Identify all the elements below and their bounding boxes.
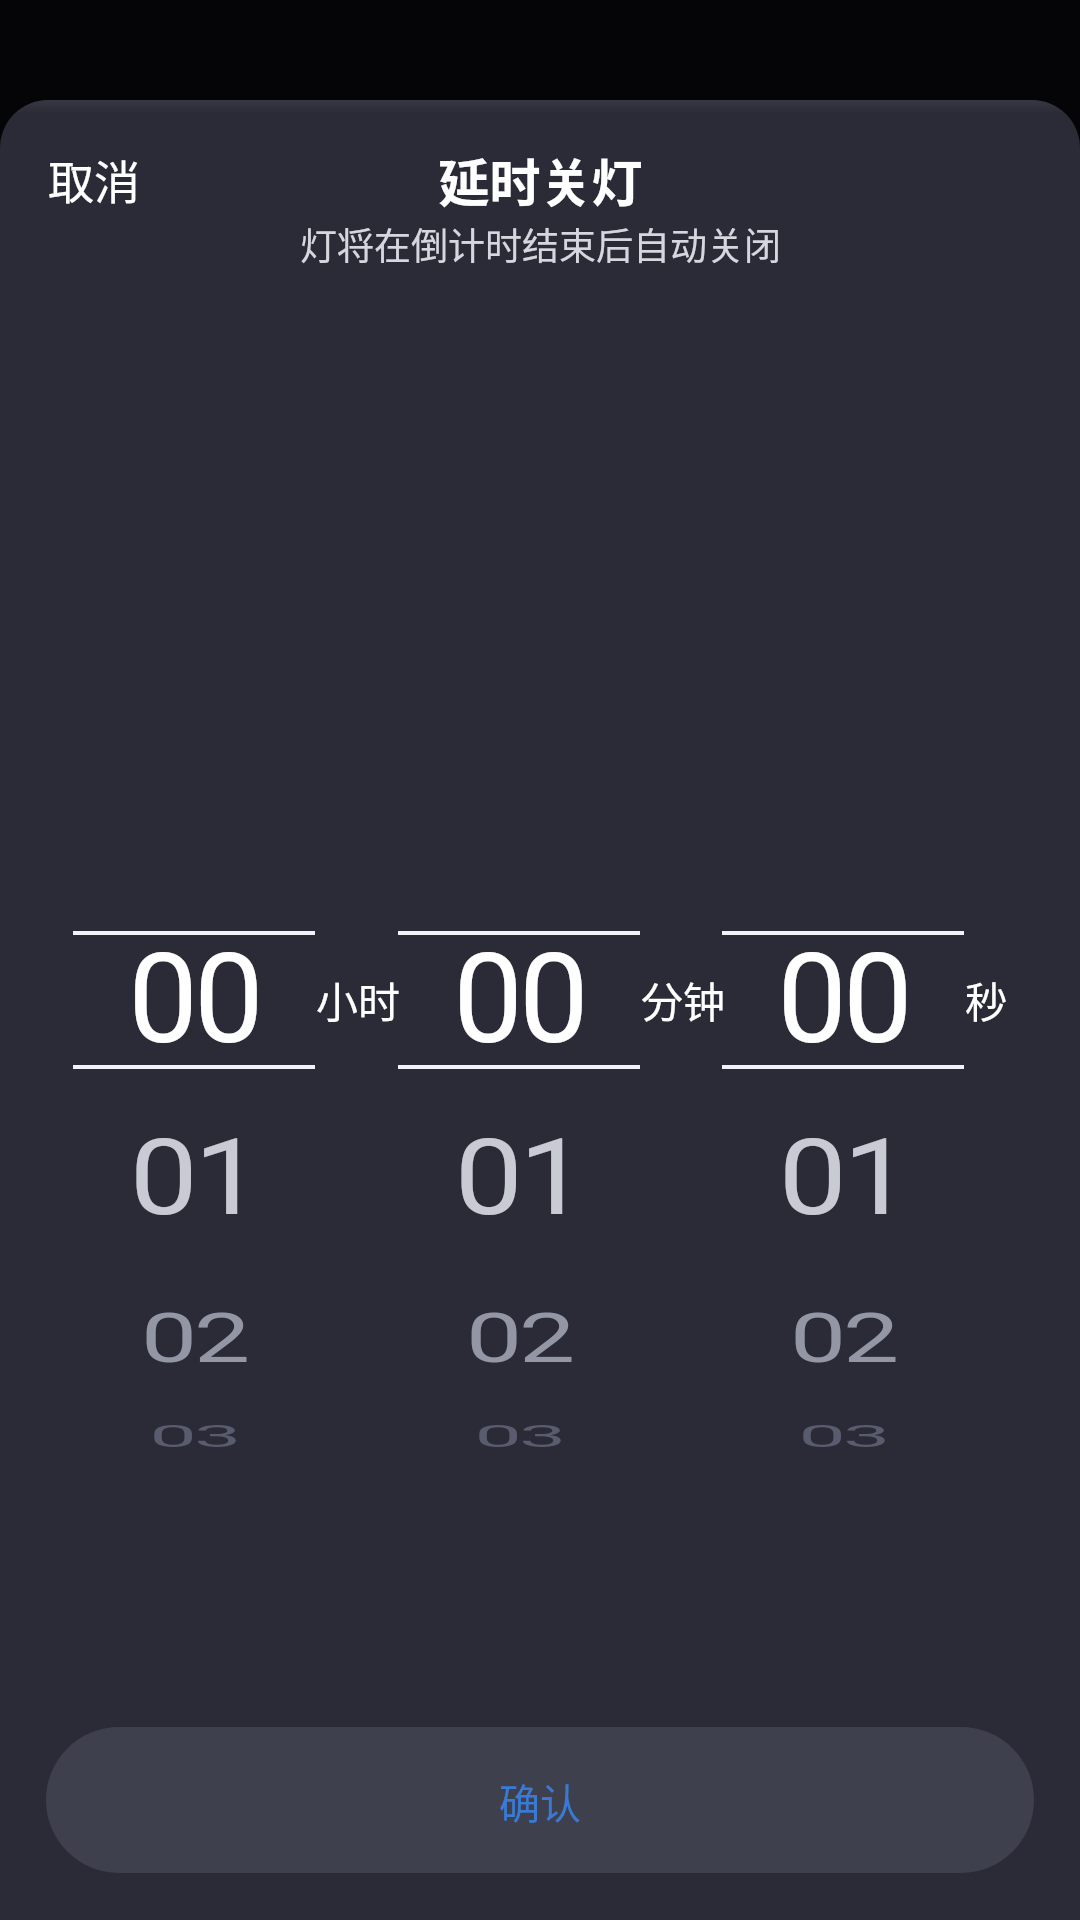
button[interactable]: 确认 (46, 1727, 1034, 1873)
staticText: 秒 (965, 969, 1008, 1030)
staticText: 01 (454, 1115, 583, 1240)
staticText: 01 (129, 1115, 258, 1240)
staticText: 00 (777, 927, 909, 1072)
staticText: 02 (790, 1298, 896, 1378)
staticText: 01 (778, 1115, 907, 1240)
staticText: 延时关灯 (438, 143, 643, 217)
staticText: 02 (141, 1298, 247, 1378)
staticText: 灯将在倒计时结束后自动关闭 (300, 217, 781, 271)
staticText: 确认 (499, 1771, 581, 1830)
staticText: 00 (128, 927, 260, 1072)
button[interactable]: 取消 (22, 134, 166, 225)
button[interactable]: Hours (73, 801, 399, 1501)
staticText: 02 (466, 1298, 572, 1378)
button[interactable]: Seconds (722, 801, 1048, 1501)
staticText: 03 (798, 1418, 888, 1454)
staticText: 小时 (316, 969, 401, 1030)
staticText: 03 (474, 1418, 564, 1454)
staticText: 分钟 (641, 969, 726, 1030)
button[interactable]: Minutes (398, 801, 724, 1501)
staticText: 03 (149, 1418, 239, 1454)
staticText: 取消 (48, 146, 140, 213)
staticText: 00 (453, 927, 585, 1072)
